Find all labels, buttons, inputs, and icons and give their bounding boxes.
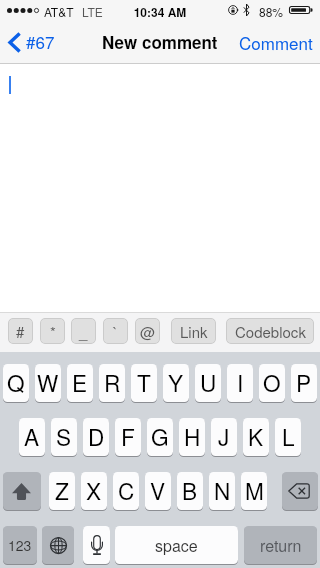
- button[interactable]: Shift: [3, 472, 41, 511]
- staticText: M: [245, 474, 264, 506]
- staticText: L: [282, 420, 295, 452]
- button[interactable]: return: [244, 526, 317, 565]
- staticText: X: [86, 474, 102, 506]
- staticText: 88%: [259, 3, 284, 20]
- staticText: Z: [55, 474, 69, 506]
- button[interactable]: `: [103, 318, 128, 344]
- staticText: D: [88, 420, 105, 452]
- staticText: Comment: [239, 30, 313, 54]
- button[interactable]: Change keyboard: [42, 526, 74, 565]
- staticText: K: [248, 420, 264, 452]
- button[interactable]: Q: [3, 364, 29, 403]
- staticText: _: [79, 321, 88, 342]
- button[interactable]: V: [145, 472, 171, 511]
- button[interactable]: R: [99, 364, 125, 403]
- staticText: #: [16, 321, 25, 342]
- button[interactable]: I: [227, 364, 253, 403]
- staticText: C: [118, 474, 135, 506]
- button[interactable]: J: [211, 418, 237, 457]
- button[interactable]: W: [35, 364, 61, 403]
- button[interactable]: Dictate: [83, 526, 110, 565]
- button[interactable]: #: [8, 318, 33, 344]
- staticText: U: [200, 366, 217, 398]
- staticText: AT&T: [44, 3, 74, 20]
- button[interactable]: Comment: [232, 21, 320, 63]
- button[interactable]: M: [241, 472, 267, 511]
- staticText: J: [218, 420, 230, 452]
- staticText: Q: [7, 366, 25, 398]
- button[interactable]: 123: [3, 526, 37, 565]
- button[interactable]: space: [115, 526, 238, 565]
- staticText: E: [72, 366, 88, 398]
- staticText: B: [182, 474, 198, 506]
- staticText: `: [113, 321, 118, 342]
- button[interactable]: U: [195, 364, 221, 403]
- staticText: #67: [26, 29, 55, 53]
- button[interactable]: E: [67, 364, 93, 403]
- button[interactable]: Backspace: [282, 472, 318, 511]
- button[interactable]: P: [291, 364, 317, 403]
- staticText: return: [260, 534, 302, 557]
- staticText: S: [56, 420, 72, 452]
- staticText: LTE: [82, 3, 103, 20]
- button[interactable]: Z: [49, 472, 75, 511]
- button[interactable]: X: [81, 472, 107, 511]
- button[interactable]: T: [131, 364, 157, 403]
- button[interactable]: Link: [171, 318, 216, 344]
- button[interactable]: S: [51, 418, 77, 457]
- staticText: H: [184, 420, 201, 452]
- staticText: space: [155, 534, 198, 557]
- staticText: W: [37, 366, 59, 398]
- button[interactable]: _: [71, 318, 96, 344]
- button[interactable]: Codeblock: [226, 318, 314, 344]
- staticText: O: [263, 366, 281, 398]
- button[interactable]: G: [147, 418, 173, 457]
- button[interactable]: *: [40, 318, 65, 344]
- button[interactable]: D: [83, 418, 109, 457]
- button[interactable]: K: [243, 418, 269, 457]
- staticText: Y: [168, 366, 184, 398]
- staticText: V: [150, 474, 166, 506]
- staticText: N: [214, 474, 231, 506]
- staticText: A: [24, 420, 40, 452]
- staticText: 10:34 AM: [0, 3, 320, 20]
- button[interactable]: #67: [0, 23, 65, 61]
- staticText: @: [140, 321, 156, 342]
- staticText: P: [296, 366, 312, 398]
- button[interactable]: F: [115, 418, 141, 457]
- button[interactable]: Y: [163, 364, 189, 403]
- staticText: *: [50, 321, 56, 342]
- staticText: F: [121, 420, 135, 452]
- button[interactable]: H: [179, 418, 205, 457]
- button[interactable]: N: [209, 472, 235, 511]
- staticText: Codeblock: [235, 321, 306, 342]
- staticText: I: [237, 366, 244, 398]
- staticText: Link: [180, 321, 208, 342]
- button[interactable]: L: [275, 418, 301, 457]
- button[interactable]: @: [135, 318, 160, 344]
- staticText: G: [151, 420, 169, 452]
- staticText: T: [137, 366, 151, 398]
- button[interactable]: O: [259, 364, 285, 403]
- button[interactable]: B: [177, 472, 203, 511]
- button[interactable]: C: [113, 472, 139, 511]
- staticText: New comment: [102, 30, 218, 54]
- staticText: R: [104, 366, 121, 398]
- staticText: 123: [8, 535, 32, 555]
- button[interactable]: A: [19, 418, 45, 457]
